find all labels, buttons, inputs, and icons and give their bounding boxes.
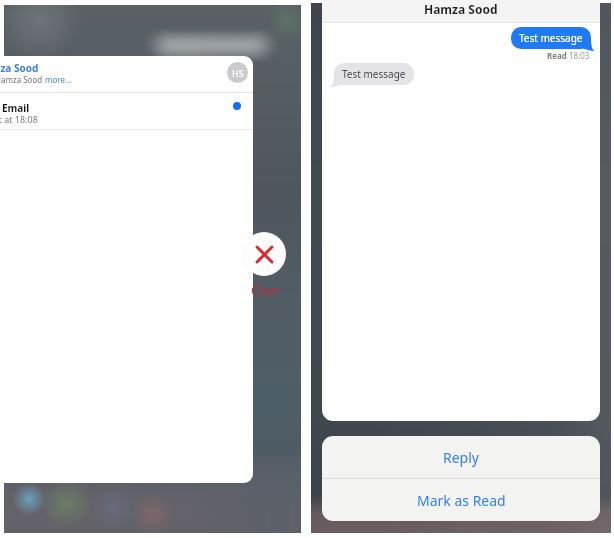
staticText: HS (232, 67, 244, 79)
staticText: Test message (519, 31, 583, 45)
staticText: more... (45, 74, 72, 85)
staticText: Test message (342, 67, 406, 81)
staticText: Reply (443, 448, 479, 467)
staticText: Hamza Sood (424, 1, 498, 17)
button[interactable]: Reply (322, 436, 600, 478)
staticText: Hamza Sood (0, 61, 39, 75)
staticText: Hamza Sood (0, 74, 45, 85)
button[interactable]: Clear (242, 232, 286, 276)
staticText: Email (2, 101, 30, 115)
staticText: Clear (251, 282, 281, 298)
button[interactable]: Mark as Read (322, 479, 600, 521)
button[interactable]: Hamza Sood (0, 56, 253, 483)
staticText: Read (547, 50, 569, 61)
staticText: 18:03 (569, 50, 590, 61)
staticText: Sent at 18:08 (0, 113, 38, 125)
staticText: Mark as Read (417, 491, 506, 510)
